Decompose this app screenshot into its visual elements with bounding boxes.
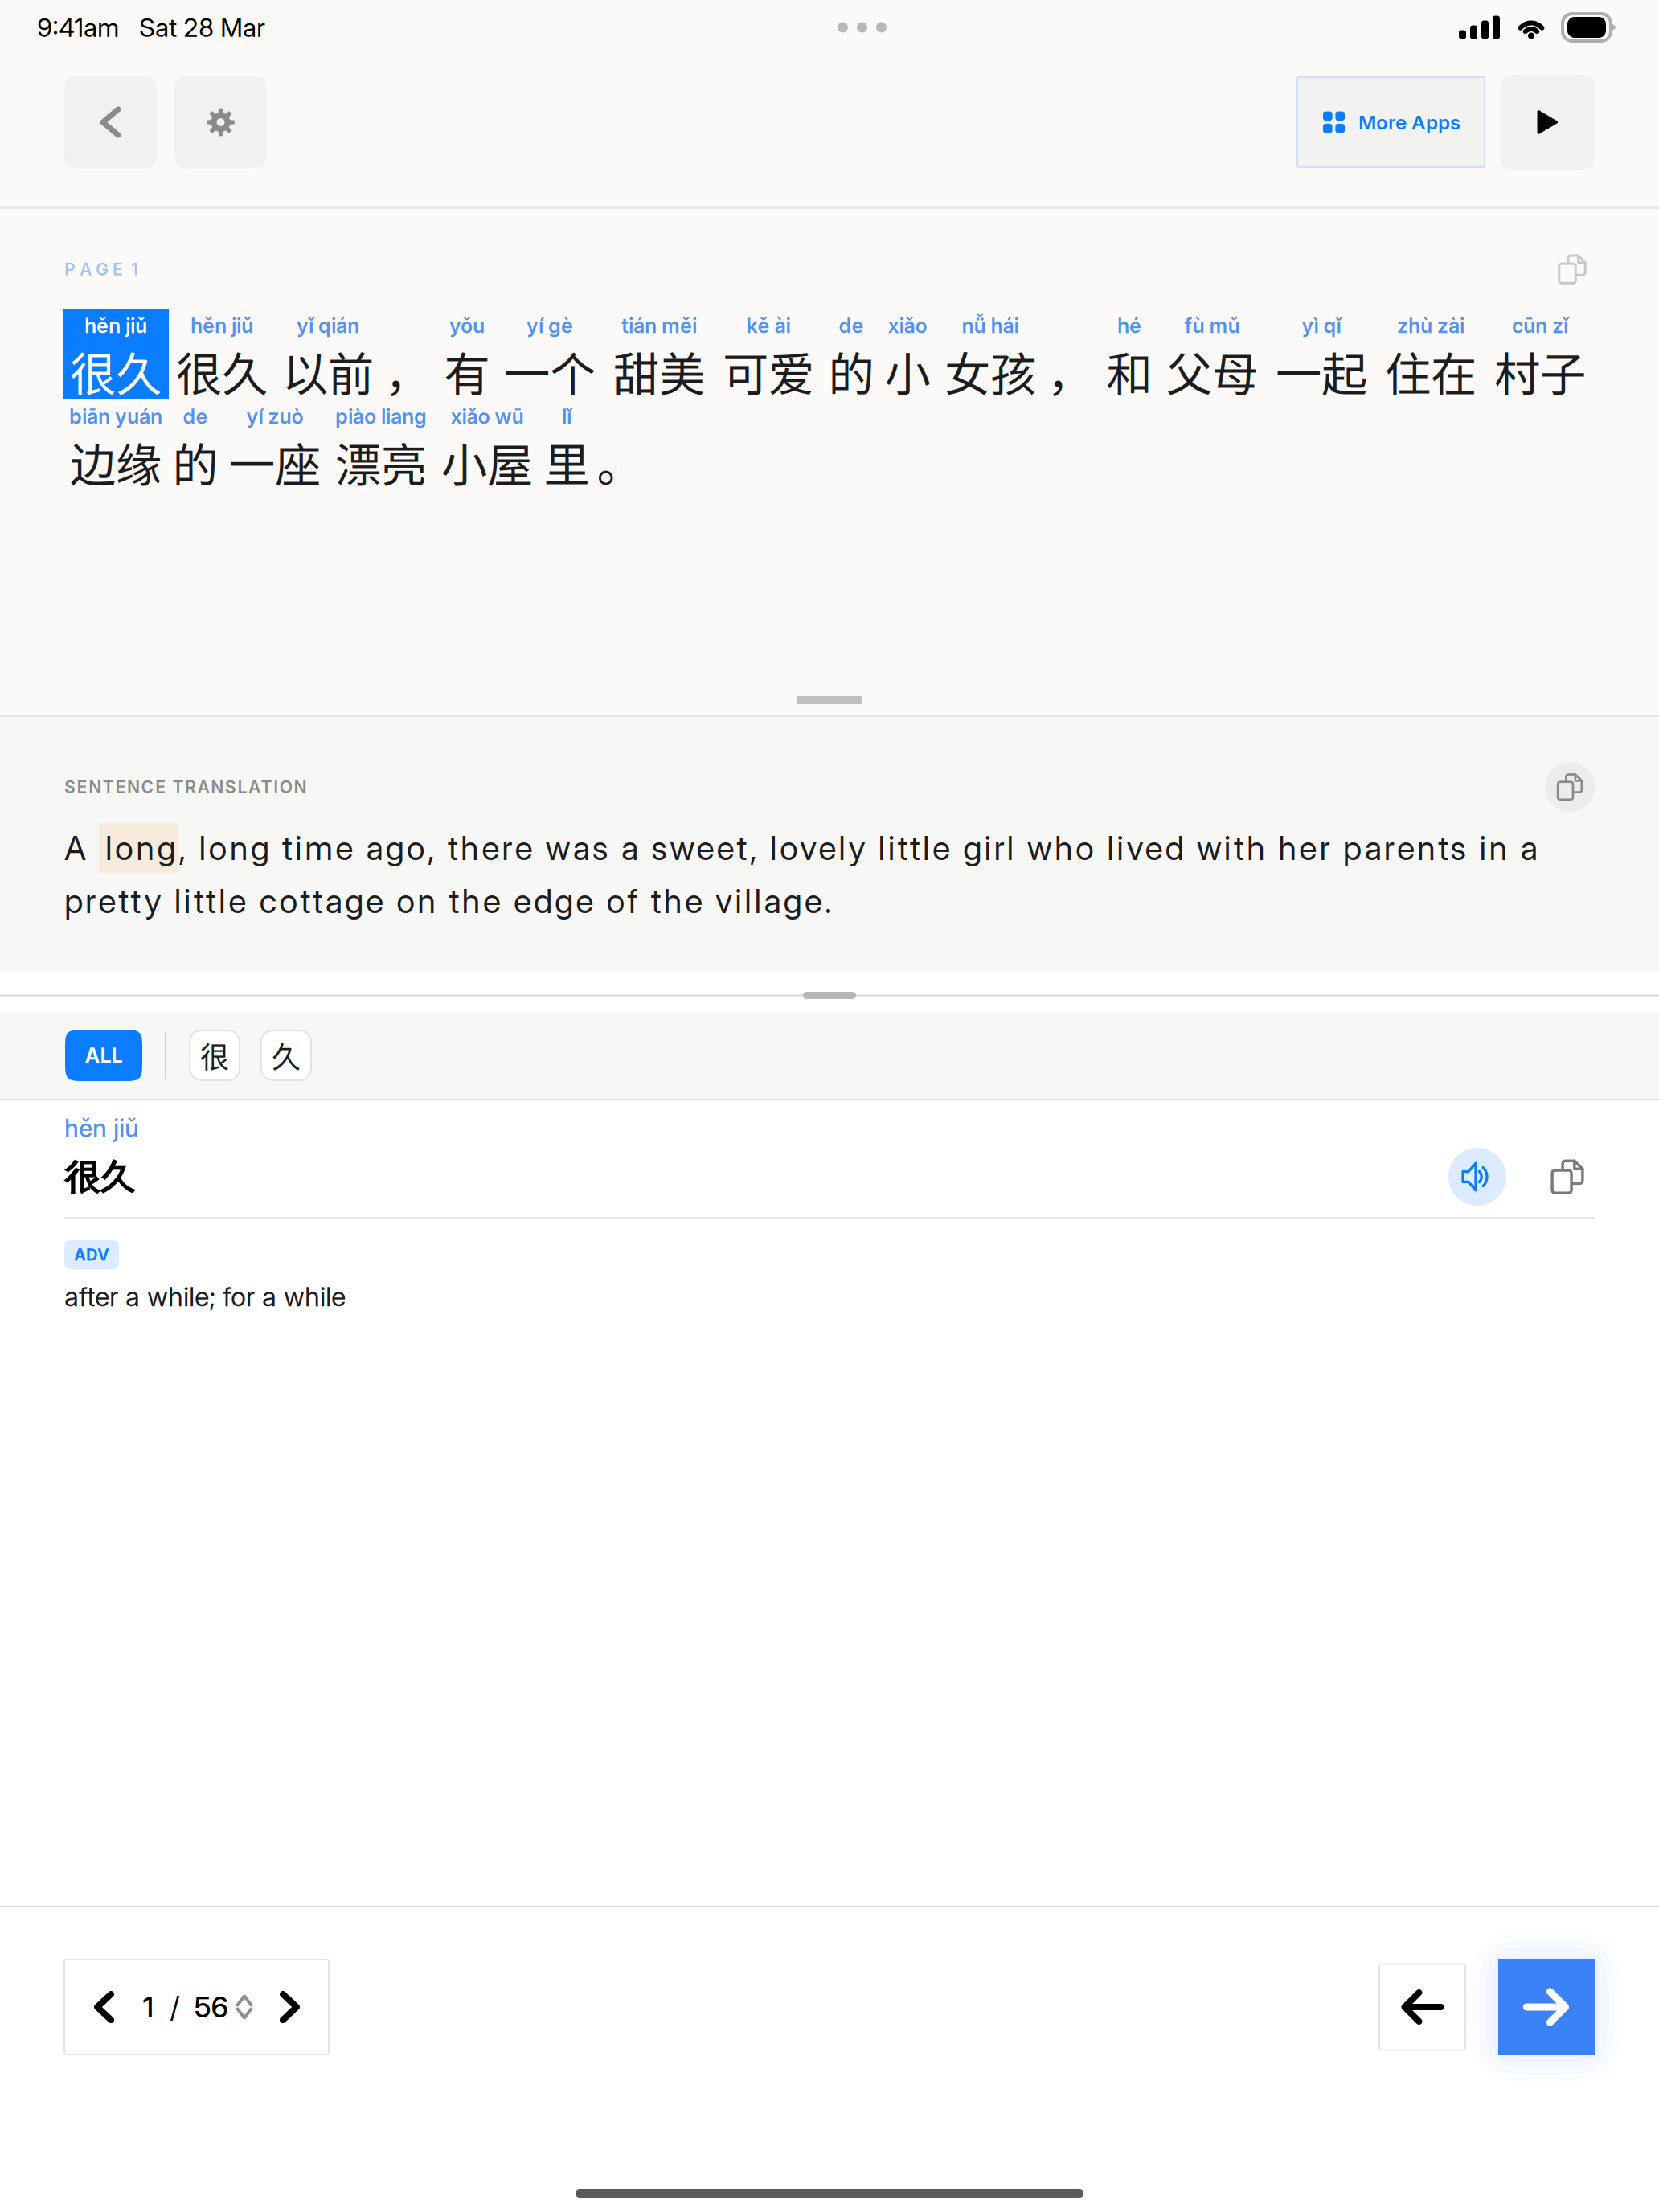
button[interactable]: Play xyxy=(1500,75,1595,170)
staticText: 小屋 xyxy=(441,428,533,495)
button[interactable]: Settings xyxy=(174,76,267,168)
staticText: 可爱 xyxy=(723,338,814,404)
staticText: de xyxy=(183,404,208,429)
staticText: nǚ hái xyxy=(962,313,1019,338)
staticText: 漂亮 xyxy=(335,428,427,495)
staticText: yǐ qián xyxy=(297,313,359,338)
staticText: ALL xyxy=(85,1043,123,1068)
staticText: 女孩 xyxy=(944,338,1036,404)
staticText: yǒu xyxy=(449,313,485,338)
staticText: 的 xyxy=(172,428,218,495)
staticText: 很久 xyxy=(176,338,268,404)
staticText: 很久 xyxy=(64,1155,135,1200)
staticText: hěn jiǔ xyxy=(84,313,147,338)
staticText: 里 xyxy=(544,428,590,495)
staticText: 一起 xyxy=(1276,338,1367,404)
staticText: ， xyxy=(1047,338,1093,404)
staticText: 和 xyxy=(1106,338,1152,404)
staticText: 小 xyxy=(885,338,930,404)
staticText: piào liang xyxy=(335,404,427,429)
staticText: SENTENCE TRANSLATION xyxy=(64,777,307,797)
staticText: lǐ xyxy=(562,404,571,429)
staticText: 一座 xyxy=(229,428,321,495)
staticText: hěn jiǔ xyxy=(64,1113,139,1143)
staticText: 甜美 xyxy=(613,338,705,404)
staticText: 以前 xyxy=(282,338,374,404)
staticText: Sat 28 Mar xyxy=(139,12,265,43)
staticText: yì qǐ xyxy=(1302,313,1341,338)
staticText: / xyxy=(170,1990,180,2025)
staticText: 边缘 xyxy=(70,428,162,495)
staticText: xiǎo xyxy=(888,313,927,338)
staticText: tián měi xyxy=(621,313,697,338)
staticText: 。 xyxy=(597,428,643,495)
staticText: P A G E 1 xyxy=(64,259,138,280)
staticText: 9:41am xyxy=(37,12,119,43)
staticText: 56 xyxy=(194,1990,229,2025)
button[interactable]: More Apps xyxy=(1297,77,1485,167)
staticText: yí zuò xyxy=(246,404,303,429)
staticText: 住在 xyxy=(1385,338,1477,404)
staticText: 1 xyxy=(143,1990,154,2025)
staticText: xiǎo wū xyxy=(451,404,524,429)
staticText: 很 xyxy=(200,1034,229,1076)
button[interactable]: Previous xyxy=(1379,1964,1465,2050)
staticText: hé xyxy=(1117,313,1141,338)
staticText: ， xyxy=(385,338,430,404)
staticText: More Apps xyxy=(1358,110,1460,134)
staticText: 有 xyxy=(444,338,490,404)
staticText: kě ài xyxy=(746,313,791,338)
button[interactable]: 1 xyxy=(64,1960,329,2054)
button[interactable]: Play pronunciation xyxy=(1448,1148,1506,1206)
button[interactable]: Copy sentence xyxy=(1550,247,1595,292)
staticText: cūn zǐ xyxy=(1512,313,1568,338)
staticText: 的 xyxy=(828,338,874,404)
button[interactable]: Copy word xyxy=(1538,1148,1596,1206)
staticText: after a while; for a while xyxy=(64,1280,346,1313)
staticText: , long time ago, there was a sweet, love… xyxy=(179,828,1537,868)
staticText: hěn jiǔ xyxy=(190,313,253,338)
staticText: zhù zài xyxy=(1397,313,1464,338)
button[interactable]: ALL xyxy=(65,1030,142,1081)
staticText: ADV xyxy=(74,1245,109,1264)
staticText: yí gè xyxy=(526,313,573,338)
staticText: long xyxy=(105,828,175,868)
staticText: A xyxy=(64,828,86,868)
button[interactable]: Copy translation xyxy=(1545,762,1595,812)
staticText: 久 xyxy=(272,1034,301,1076)
staticText: de xyxy=(839,313,864,338)
button[interactable]: Back xyxy=(64,76,157,168)
staticText: fù mǔ xyxy=(1184,313,1240,338)
staticText: pretty little cottage on the edge of the… xyxy=(64,881,832,921)
staticText: 父母 xyxy=(1166,338,1258,404)
button[interactable]: Next xyxy=(1498,1959,1595,2055)
staticText: 很久 xyxy=(70,338,162,404)
staticText: 村子 xyxy=(1494,338,1586,404)
staticText: 一个 xyxy=(504,338,596,404)
staticText: biān yuán xyxy=(69,404,162,429)
button[interactable]: 很 xyxy=(190,1030,240,1080)
button[interactable]: 久 xyxy=(261,1030,311,1080)
